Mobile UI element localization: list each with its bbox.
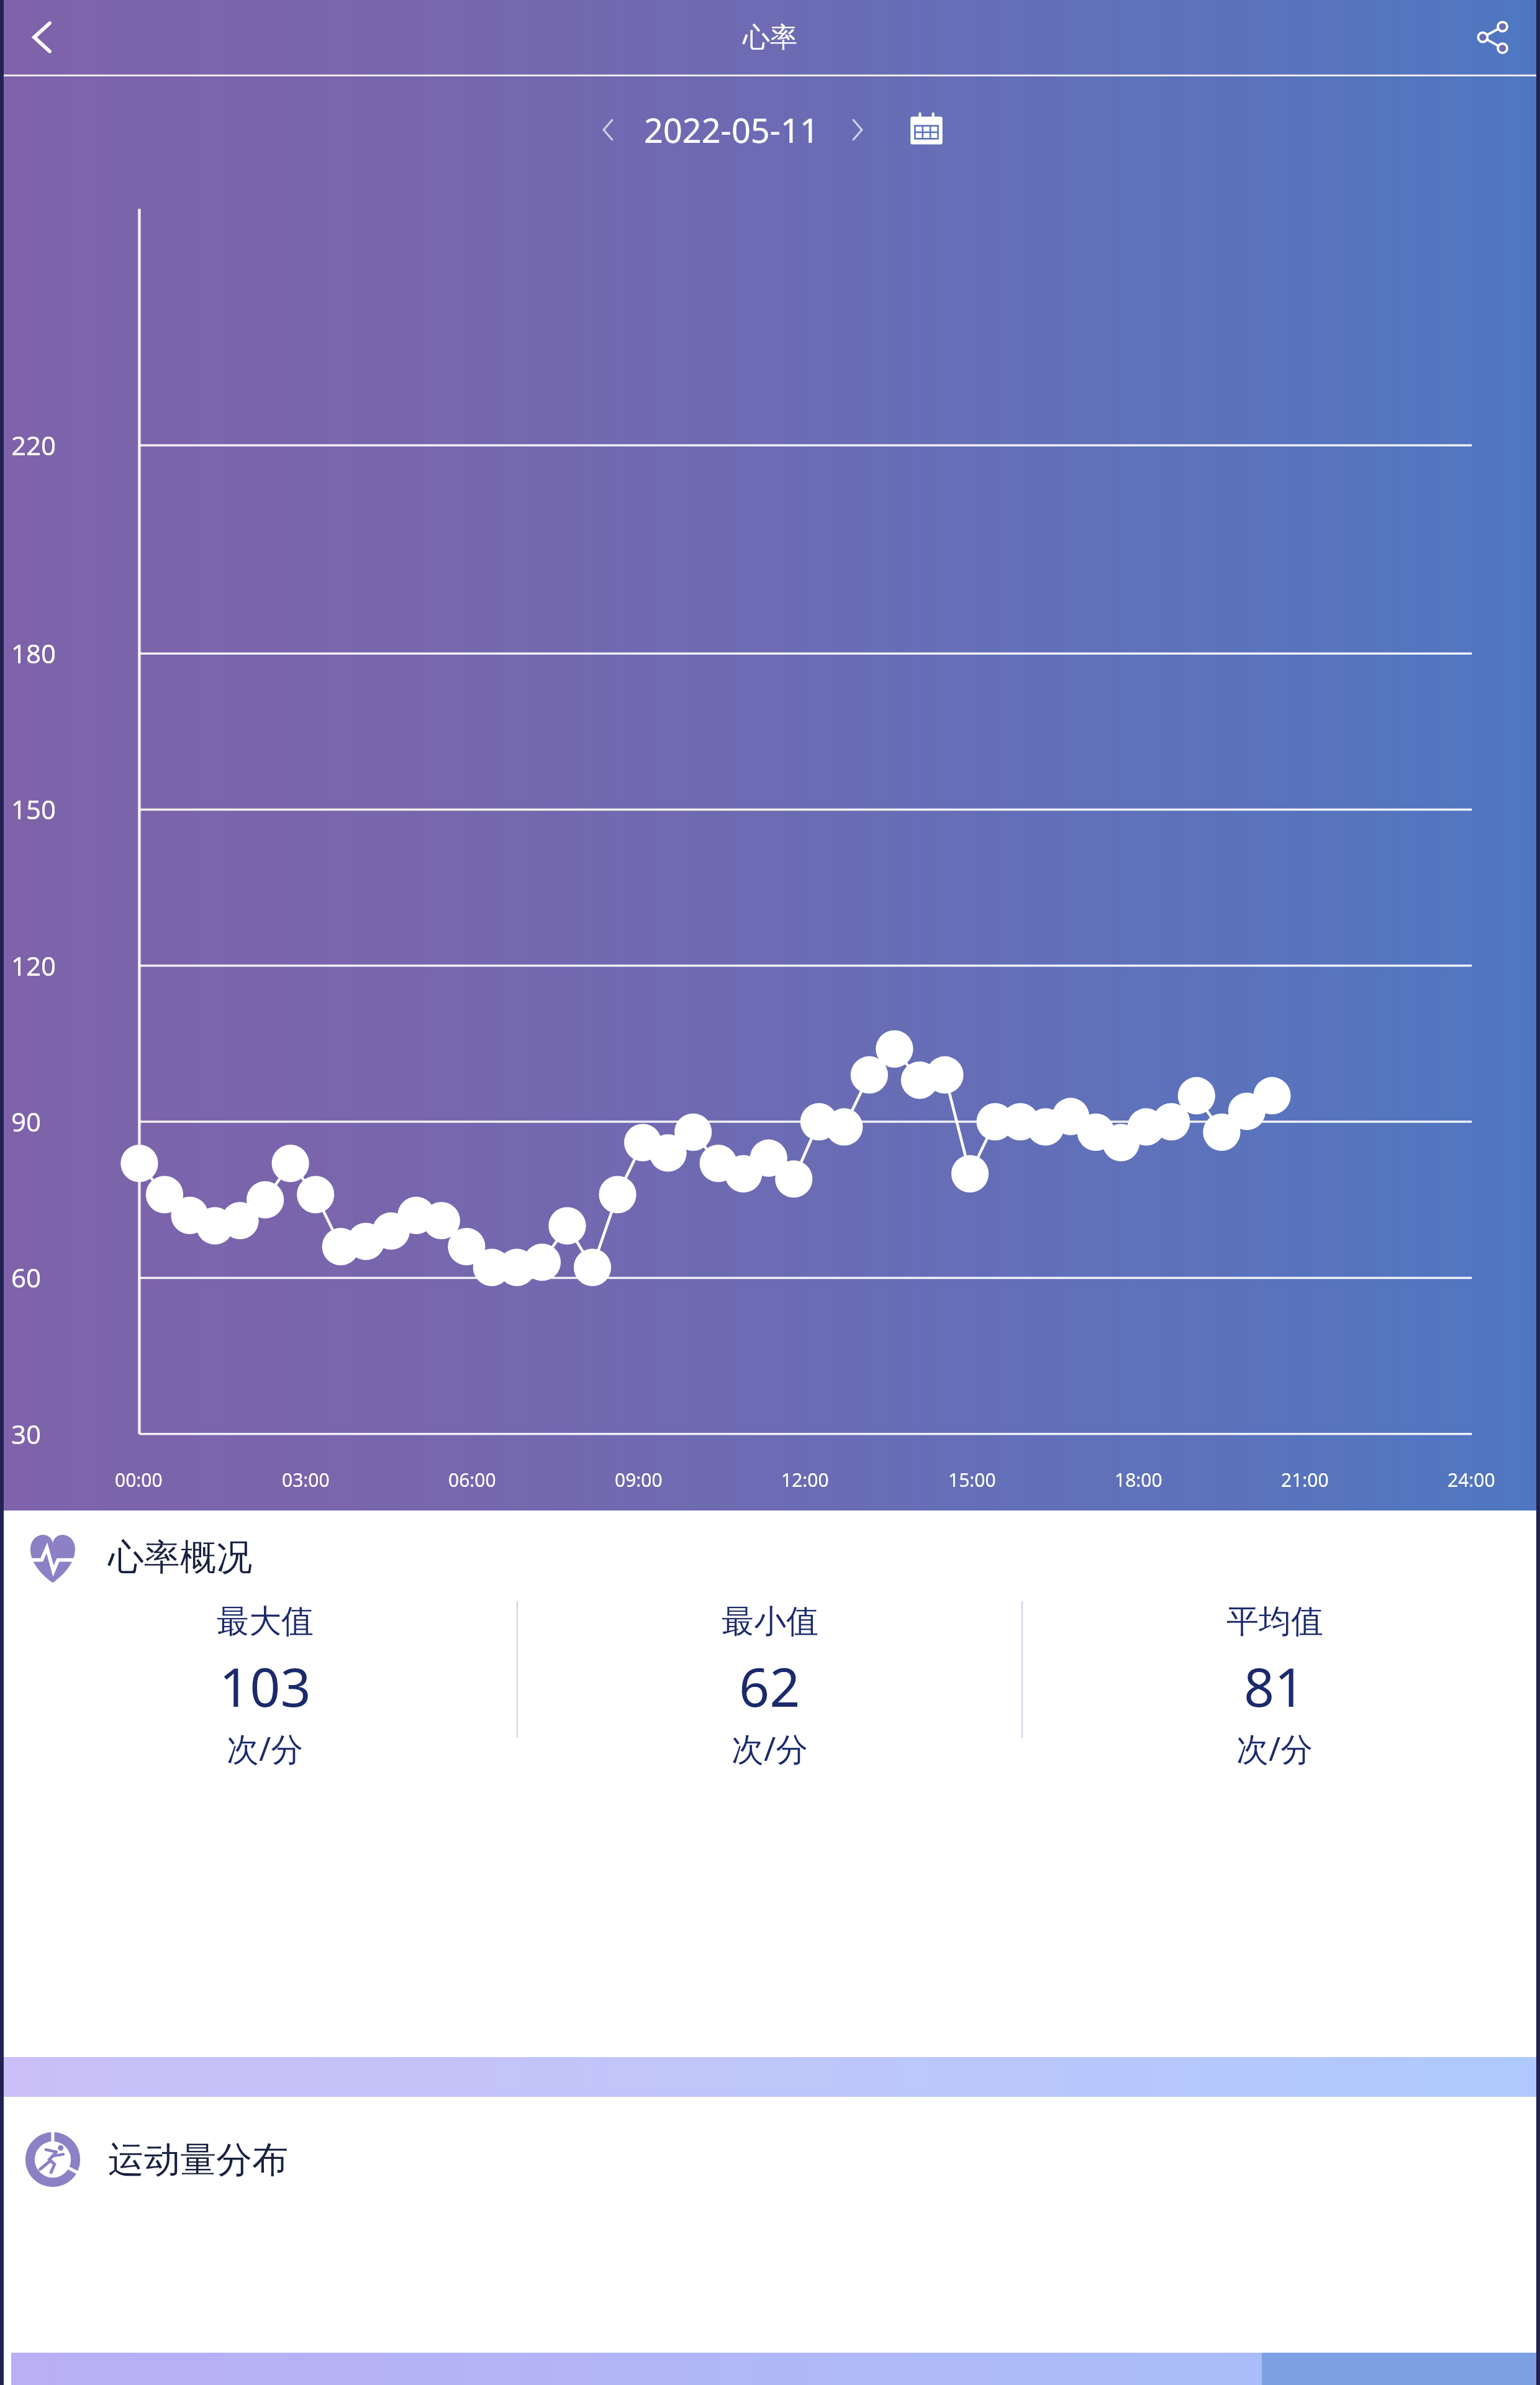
button[interactable]: 最小值 — [518, 1601, 1021, 1770]
staticText: 120 — [11, 948, 57, 983]
staticText: 21:00 — [1281, 1467, 1329, 1492]
staticText: 03:00 — [282, 1467, 330, 1492]
button[interactable]: Previous day — [584, 106, 633, 154]
staticText: 平均值 — [1226, 1601, 1323, 1642]
button[interactable]: 心率概况 — [4, 1510, 1536, 1592]
staticText: 103 — [219, 1650, 311, 1722]
staticText: 220 — [11, 427, 57, 463]
staticText: 心率概况 — [108, 1535, 252, 1580]
staticText: 90 — [11, 1104, 42, 1139]
button[interactable]: Back — [10, 5, 75, 70]
button[interactable]: 运动量分布 — [4, 2113, 1536, 2195]
button[interactable]: Share — [1463, 7, 1523, 67]
staticText: 最大值 — [217, 1601, 314, 1642]
staticText: 运动量分布 — [108, 2137, 288, 2183]
button[interactable]: 最大值 — [14, 1601, 517, 1770]
staticText: 次/分 — [227, 1726, 304, 1770]
staticText: 次/分 — [731, 1726, 808, 1770]
staticText: 18:00 — [1115, 1467, 1162, 1492]
staticText: 最小值 — [722, 1601, 818, 1642]
staticText: 06:00 — [448, 1467, 496, 1492]
staticText: 150 — [11, 791, 57, 827]
staticText: 81 — [1244, 1650, 1305, 1722]
staticText: 15:00 — [948, 1467, 996, 1492]
staticText: 180 — [11, 635, 57, 671]
button[interactable]: 2022-05-11 — [644, 107, 819, 153]
button[interactable]: Next day — [833, 106, 881, 154]
button[interactable]: Pick date — [897, 101, 956, 159]
staticText: 62 — [739, 1650, 800, 1722]
staticText: 00:00 — [115, 1467, 163, 1492]
staticText: 心率 — [743, 20, 797, 55]
staticText: 24:00 — [1447, 1467, 1495, 1492]
staticText: 30 — [11, 1416, 42, 1451]
staticText: 次/分 — [1236, 1726, 1313, 1770]
staticText: 12:00 — [781, 1467, 829, 1492]
button[interactable]: 平均值 — [1023, 1601, 1526, 1770]
staticText: 60 — [11, 1260, 42, 1295]
staticText: 09:00 — [615, 1467, 663, 1492]
